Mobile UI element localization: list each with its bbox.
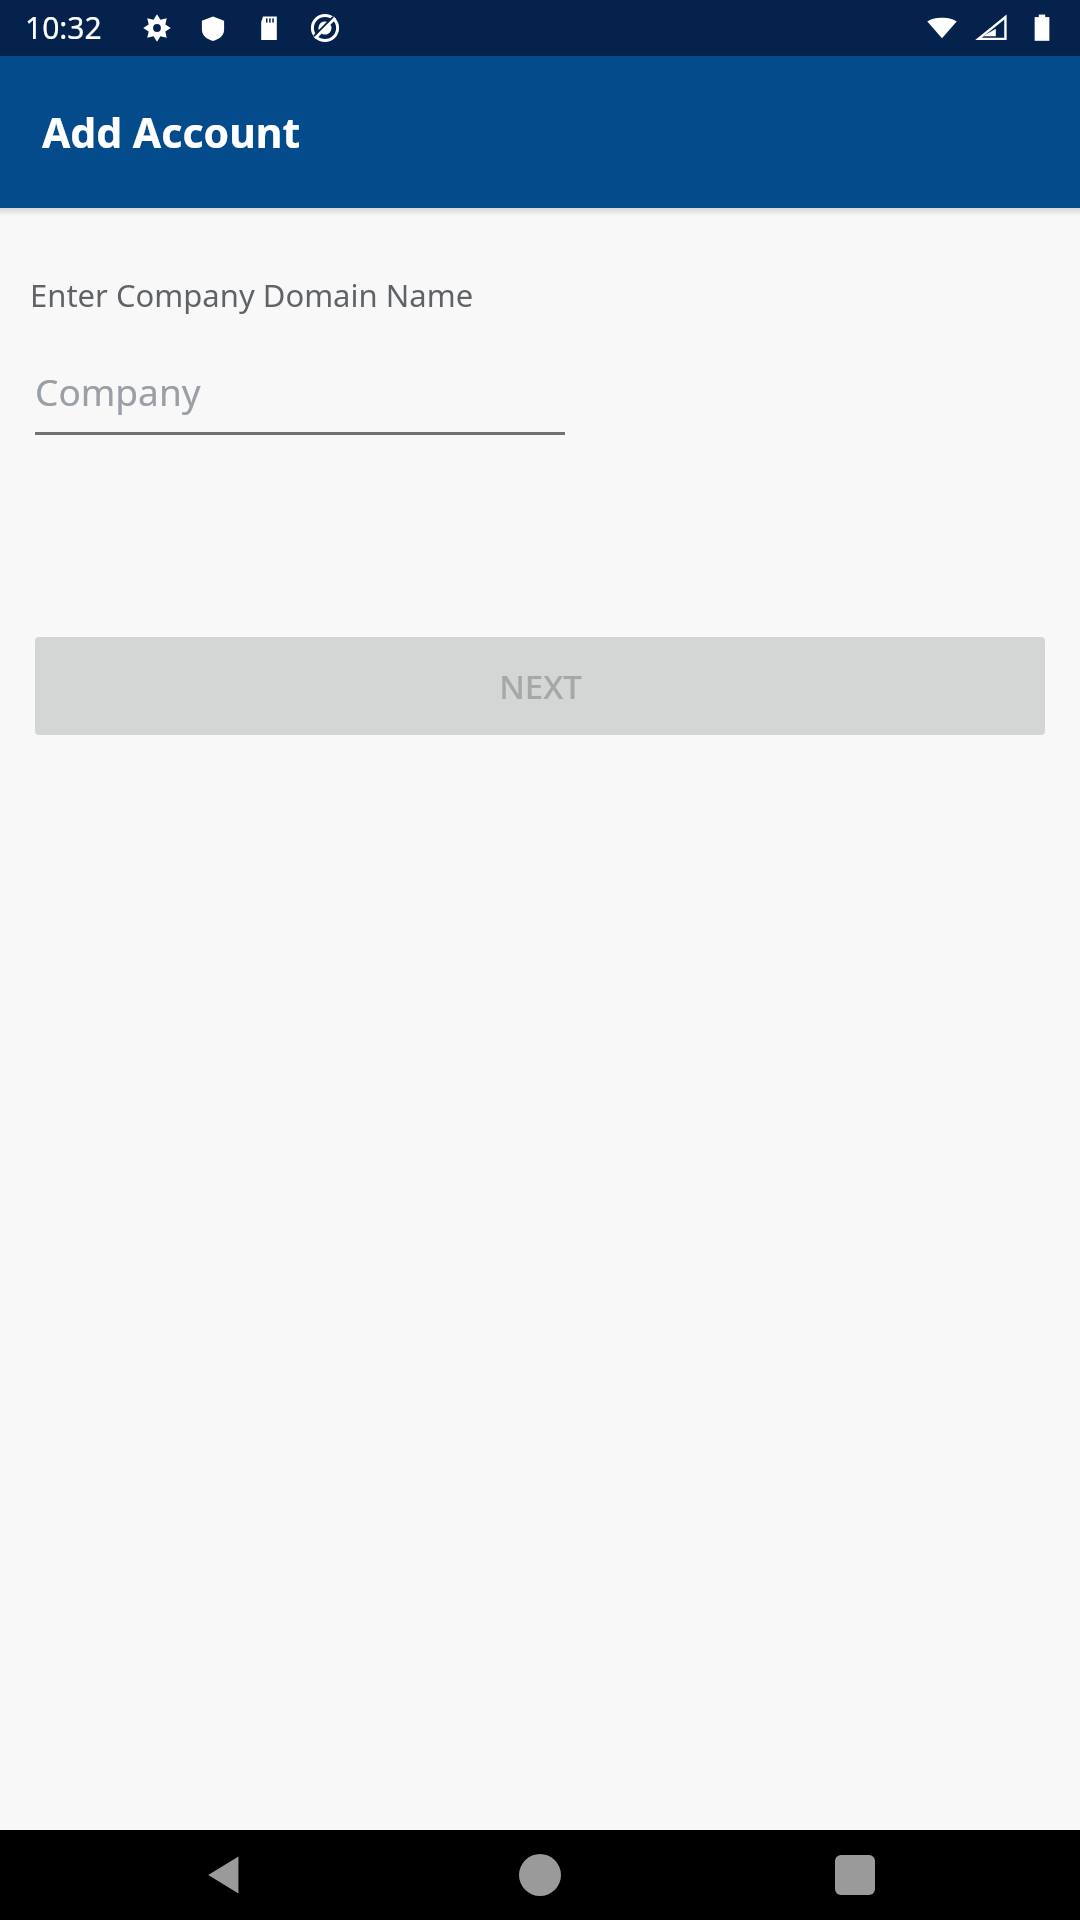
button[interactable]: Back [180,1830,270,1920]
button[interactable]: Recent apps [810,1830,900,1920]
staticText: Add Account [42,104,301,160]
button[interactable]: Company [35,364,565,435]
button[interactable]: Home [495,1830,585,1920]
staticText: Company [35,366,201,416]
button[interactable]: NEXT [35,637,1045,735]
staticText: 10:32 [25,7,102,48]
staticText: Enter Company Domain Name [30,274,474,316]
staticText: NEXT [499,664,582,709]
